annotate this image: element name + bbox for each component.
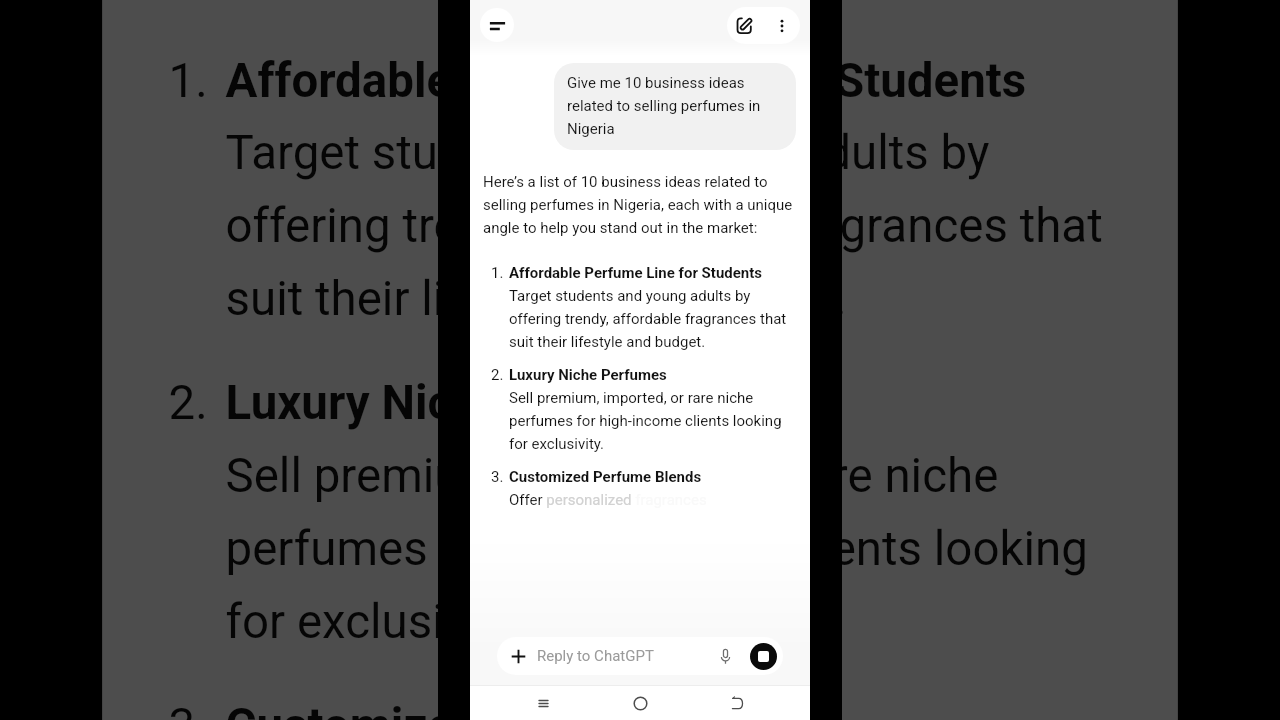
staticText: Customized Perfume Blends [509, 464, 702, 487]
staticText: 1. [491, 260, 509, 283]
staticText: 2. [169, 362, 226, 435]
button[interactable]: Stop generating [750, 643, 777, 670]
button[interactable]: New chat [727, 7, 764, 44]
staticText: Sell premium, imported, or rare niche pe… [509, 385, 799, 454]
button[interactable]: Home [592, 686, 689, 720]
staticText: Give me 10 business ideas related to sel… [567, 70, 783, 139]
staticText: Target students and young adults by offe… [509, 283, 799, 352]
staticText: Sell premium, imported, or rare niche pe… [225, 435, 1143, 653]
staticText: Target students and young adults by offe… [225, 112, 1143, 331]
button[interactable]: Recent apps [494, 686, 592, 720]
button[interactable]: Back [689, 686, 786, 720]
staticText: Reply to ChatGPT [537, 647, 654, 665]
staticText: Customized Perfume Blends [225, 685, 836, 720]
button[interactable]: Reply to ChatGPT [497, 637, 783, 675]
button[interactable]: Give me 10 business ideas related to sel… [554, 63, 796, 150]
button[interactable]: More options [764, 8, 800, 44]
staticText: 1. [169, 40, 226, 112]
staticText: Here’s a list of 10 business ideas relat… [483, 169, 799, 238]
staticText: Luxury Niche Perfumes [509, 362, 667, 385]
staticText: 3. [491, 464, 509, 487]
staticText: 2. [491, 362, 509, 385]
button[interactable]: Open sidebar [480, 8, 514, 42]
button[interactable]: Voice input [714, 645, 736, 667]
staticText: Affordable Perfume Line for Students [225, 40, 1029, 112]
staticText: 3. [169, 685, 226, 720]
staticText: Affordable Perfume Line for Students [509, 260, 763, 283]
staticText: Luxury Niche Perfumes [225, 362, 725, 435]
staticText: Offer personalized fragrances [509, 487, 707, 510]
